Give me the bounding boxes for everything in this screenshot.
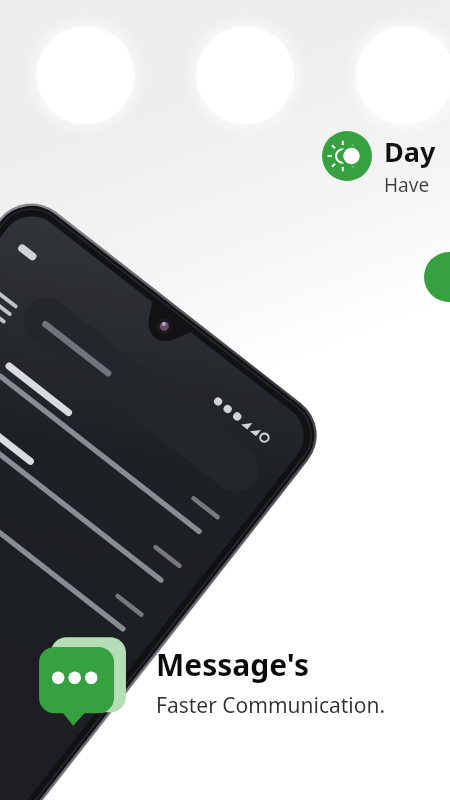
staticText: Have (384, 172, 430, 198)
staticText: Day (384, 133, 436, 170)
staticText: Message's (156, 644, 309, 685)
button[interactable]: Messages app icon (32, 628, 386, 736)
other: Messages app icon (32, 628, 140, 736)
other: Day night mode (322, 131, 372, 181)
button[interactable]: Day night mode (322, 131, 436, 198)
button[interactable]: Feature (424, 252, 450, 302)
staticText: Faster Communication. (156, 691, 386, 720)
